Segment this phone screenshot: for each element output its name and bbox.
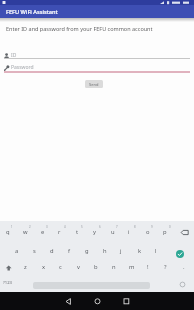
staticText: 7	[116, 225, 118, 229]
button[interactable]: u	[111, 228, 115, 236]
button[interactable]: p	[163, 228, 167, 236]
button[interactable]: j	[120, 247, 122, 255]
staticText: FEFU WiFi Assistant	[6, 8, 58, 16]
button[interactable]: w	[23, 228, 28, 236]
button[interactable]	[94, 298, 101, 305]
button[interactable]	[123, 298, 130, 305]
button[interactable]: g	[85, 247, 89, 255]
button[interactable]: t	[76, 228, 79, 236]
button[interactable]: y	[93, 228, 96, 236]
button[interactable]: Send	[85, 80, 103, 88]
button[interactable]: e	[41, 228, 45, 236]
button[interactable]: k	[138, 247, 142, 255]
button[interactable]: ID	[0, 51, 194, 61]
button[interactable]: x	[42, 263, 46, 271]
button[interactable]: a	[15, 247, 19, 255]
button[interactable]: q	[6, 228, 10, 236]
button[interactable]: b	[94, 263, 98, 271]
button[interactable]	[181, 230, 189, 236]
staticText: 4	[64, 225, 66, 229]
button[interactable]: h	[103, 247, 107, 255]
button[interactable]: c	[59, 263, 62, 271]
staticText: Send	[89, 82, 99, 87]
staticText: Enter ID and password from your FEFU com…	[6, 25, 153, 32]
button[interactable]	[176, 250, 184, 258]
button[interactable]: .	[183, 263, 185, 271]
staticText: 2	[29, 225, 31, 229]
staticText: ID	[11, 52, 17, 59]
button[interactable]: r	[58, 228, 61, 236]
staticText: 0	[169, 225, 171, 229]
button[interactable]: !	[147, 263, 149, 271]
button[interactable]: z	[24, 263, 27, 271]
staticText: 1	[11, 225, 13, 229]
staticText: 6	[99, 225, 101, 229]
button[interactable]: f	[68, 247, 70, 255]
button[interactable]: o	[146, 228, 150, 236]
staticText: 3	[46, 225, 48, 229]
button[interactable]: l	[155, 247, 157, 255]
button[interactable]: ?	[164, 263, 167, 271]
staticText: 5	[81, 225, 83, 229]
staticText: 9	[151, 225, 153, 229]
button[interactable]: d	[50, 247, 54, 255]
button[interactable]: ?123	[3, 280, 13, 286]
button[interactable]: Password	[0, 63, 194, 73]
staticText: Password	[11, 64, 34, 71]
button[interactable]	[65, 298, 72, 305]
button[interactable]: m	[129, 263, 135, 271]
button[interactable]: v	[77, 263, 80, 271]
button[interactable]: s	[33, 247, 36, 255]
staticText: 8	[134, 225, 136, 229]
button[interactable]: n	[112, 263, 116, 271]
button[interactable]	[5, 265, 13, 272]
button[interactable]: i	[128, 228, 130, 236]
